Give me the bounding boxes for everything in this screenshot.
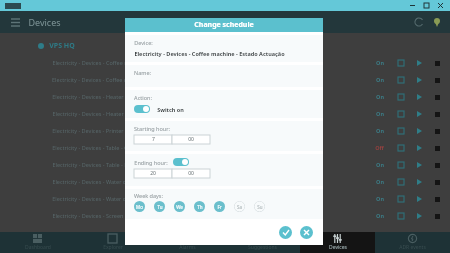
button[interactable]: Schedule	[394, 107, 408, 121]
button[interactable]: Schedule	[394, 192, 408, 206]
button[interactable]: Stop	[430, 90, 444, 104]
staticText: Action:	[134, 94, 152, 101]
button[interactable]: Confirm	[279, 226, 292, 239]
button[interactable]: Electricity - Devices - Heater - Estado …	[0, 88, 450, 105]
staticText: Electricity - Devices - Coffee machine -…	[134, 50, 285, 57]
button[interactable]	[173, 158, 189, 166]
button[interactable]: Electricity - Devices - Water cooler - E…	[0, 173, 450, 190]
staticText: 7	[152, 136, 155, 143]
button[interactable]: Stop	[430, 192, 444, 206]
staticText: Electricity - Devices - Printer - Estado…	[52, 127, 171, 134]
button[interactable]: Maximize	[419, 0, 433, 11]
button[interactable]: Stop	[430, 124, 444, 138]
button[interactable]: Menu	[8, 15, 22, 29]
staticText: Switch on	[157, 106, 184, 113]
button[interactable]: Stop	[430, 107, 444, 121]
button[interactable]: Schedule	[394, 175, 408, 189]
button[interactable]: Electricity - Devices - Table - Leds On/…	[0, 156, 450, 173]
button[interactable]: Run	[412, 73, 426, 87]
button[interactable]: Electricity - Devices - Table - Generic …	[0, 139, 450, 156]
button[interactable]: ADR events	[375, 232, 450, 253]
button[interactable]: Minimize	[405, 0, 419, 11]
button[interactable]: Stop	[430, 73, 444, 87]
staticText: 00	[188, 136, 194, 143]
staticText: Name:	[134, 69, 151, 76]
button[interactable]: Electricity - Devices - Screen - Estado …	[0, 207, 450, 224]
staticText: Mo	[136, 204, 143, 210]
staticText: We	[176, 204, 183, 210]
button[interactable]: Run	[412, 209, 426, 223]
staticText: Electricity - Devices - Coffee machine -…	[52, 76, 182, 83]
staticText: Electricity - Devices - Heater - Leds On…	[52, 110, 160, 117]
staticText: Devices	[329, 244, 347, 251]
button[interactable]: We	[174, 201, 185, 212]
button[interactable]: Stop	[430, 175, 444, 189]
button[interactable]: Stop	[430, 141, 444, 155]
staticText: Electricity - Devices - Heater - Estado …	[52, 93, 171, 100]
button[interactable]: Run	[412, 107, 426, 121]
button[interactable]: VPS HQ	[0, 38, 450, 54]
button[interactable]: Schedule	[394, 73, 408, 87]
button[interactable]: Sa	[234, 201, 245, 212]
button[interactable]: Stop	[430, 56, 444, 70]
button[interactable]: Run	[412, 56, 426, 70]
button[interactable]: Schedule	[394, 56, 408, 70]
button[interactable]: Cancel	[300, 226, 313, 239]
button[interactable]: Mo	[134, 201, 145, 212]
button[interactable]: Electricity - Devices - Printer - Estado…	[0, 122, 450, 139]
button[interactable]: Close	[433, 0, 447, 11]
button[interactable]: Run	[412, 90, 426, 104]
button[interactable]: Explorer	[75, 232, 150, 253]
button[interactable]: Schedule	[394, 124, 408, 138]
button[interactable]: Electricity - Devices - Coffee machine -…	[0, 71, 450, 88]
button[interactable]: Th	[194, 201, 205, 212]
button[interactable]: Suggestions	[225, 232, 300, 253]
staticText: Electricity - Devices - Water cooler - E…	[52, 178, 171, 185]
button[interactable]: Dashboard	[0, 232, 75, 253]
staticText: Fr	[217, 204, 222, 210]
button[interactable]: Fr	[214, 201, 225, 212]
button[interactable]: Schedule	[394, 209, 408, 223]
button[interactable]	[134, 105, 150, 113]
staticText: On	[376, 59, 384, 66]
button[interactable]: Schedule	[394, 158, 408, 172]
staticText: On	[376, 110, 384, 117]
button[interactable]: Stop	[430, 158, 444, 172]
button[interactable]: Stop	[430, 209, 444, 223]
staticText: Ending hour:	[134, 159, 168, 166]
button[interactable]: Refresh	[410, 13, 428, 31]
staticText: Electricity - Devices - Water cooler - L…	[52, 195, 175, 202]
button[interactable]: Alarms	[150, 232, 225, 253]
button[interactable]: Schedule	[394, 90, 408, 104]
button[interactable]: 00	[172, 169, 210, 178]
staticText: Electricity - Devices - Coffee machine -…	[52, 59, 194, 66]
button[interactable]: Run	[412, 124, 426, 138]
button[interactable]: Run	[412, 192, 426, 206]
staticText: Tu	[157, 204, 163, 210]
button[interactable]: 7	[134, 135, 172, 144]
staticText: Suggestions	[248, 244, 277, 251]
button[interactable]: Devices	[300, 232, 375, 253]
button[interactable]: Run	[412, 141, 426, 155]
staticText: Su	[257, 204, 263, 210]
button[interactable]: Tu	[154, 201, 165, 212]
staticText: Electricity - Devices - Screen - Estado …	[52, 212, 171, 219]
button[interactable]: Electricity - Devices - Water cooler - L…	[0, 190, 450, 207]
button[interactable]: 00	[172, 135, 210, 144]
staticText: Off	[375, 144, 384, 151]
staticText: Explorer	[103, 244, 123, 251]
staticText: Device:	[134, 39, 153, 46]
button[interactable]: Electricity - Devices - Heater - Leds On…	[0, 105, 450, 122]
staticText: Week days:	[134, 192, 163, 199]
staticText: Alarms	[179, 244, 196, 251]
button[interactable]: Run	[412, 158, 426, 172]
staticText: Starting hour:	[134, 125, 170, 132]
button[interactable]: Run	[412, 175, 426, 189]
button[interactable]: 20	[134, 169, 172, 178]
button[interactable]: Su	[254, 201, 265, 212]
button[interactable]: Electricity - Devices - Coffee machine -…	[0, 54, 450, 71]
staticText: 20	[150, 170, 156, 177]
button[interactable]: Schedule	[394, 141, 408, 155]
button[interactable]: Location	[428, 13, 446, 31]
staticText: On	[376, 212, 384, 219]
